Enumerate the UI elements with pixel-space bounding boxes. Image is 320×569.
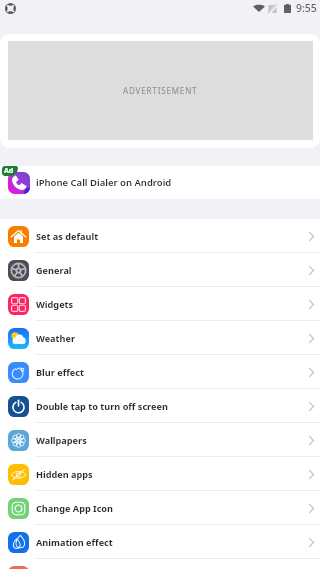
staticText: Wallpapers [36,434,87,446]
staticText: ADVERTISEMENT [123,85,198,96]
staticText: Double tap to turn off screen [36,400,168,412]
staticText: 9:55 [296,1,317,15]
staticText: Change App Icon [36,502,114,514]
button[interactable]: Double tap to turn off screen [0,389,320,423]
staticText: Hidden apps [36,468,93,480]
button[interactable]: General [0,253,320,287]
button[interactable]: Set as default [0,219,320,253]
button[interactable]: Hidden apps [0,457,320,491]
button[interactable]: Blur effect [0,355,320,389]
button[interactable]: Widgets [0,287,320,321]
staticText: Widgets [36,298,74,310]
staticText: Set as default [36,230,99,242]
button[interactable]: Change App Icon [0,491,320,525]
other: App [5,3,16,14]
button[interactable]: Theme [0,559,320,569]
button[interactable]: Wallpapers [0,423,320,457]
staticText: Animation effect [36,536,113,548]
staticText: iPhone Call Dialer on Android [36,176,172,189]
button[interactable]: Weather [0,321,320,355]
button[interactable]: Animation effect [0,525,320,559]
staticText: Ad [4,166,14,176]
staticText: Blur effect [36,366,84,378]
staticText: Weather [36,332,76,344]
button[interactable]: iPhone Call Dialer on Android [0,166,320,199]
staticText: General [36,264,72,276]
